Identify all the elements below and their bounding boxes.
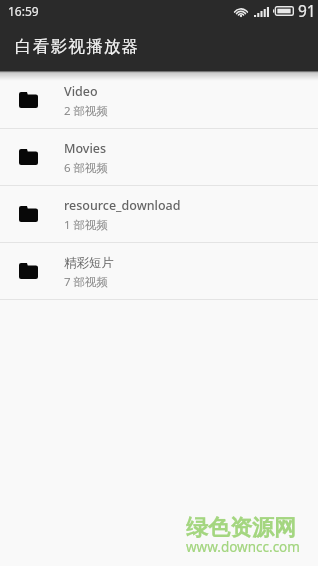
- staticText: 2 部视频: [64, 103, 109, 119]
- staticText: 精彩短片: [64, 255, 114, 271]
- staticText: Movies: [64, 140, 107, 157]
- other: Folder: [19, 92, 38, 108]
- staticText: 7 部视频: [64, 274, 109, 290]
- button[interactable]: Folder: [0, 129, 318, 185]
- staticText: Video: [64, 83, 98, 100]
- staticText: 6 部视频: [64, 160, 109, 176]
- button[interactable]: Folder: [0, 243, 318, 299]
- other: Folder: [19, 263, 38, 279]
- other: Folder: [19, 149, 38, 165]
- staticText: 91: [298, 0, 316, 17]
- staticText: 绿色资源网: [186, 514, 296, 542]
- button[interactable]: Folder: [0, 186, 318, 242]
- staticText: 白看影视播放器: [15, 36, 140, 57]
- staticText: 16:59: [8, 3, 39, 19]
- staticText: 1 部视频: [64, 217, 109, 233]
- other: Folder: [19, 206, 38, 222]
- staticText: resource_download: [64, 197, 181, 214]
- button[interactable]: Folder: [0, 72, 318, 128]
- staticText: www.downcc.com: [186, 538, 300, 556]
